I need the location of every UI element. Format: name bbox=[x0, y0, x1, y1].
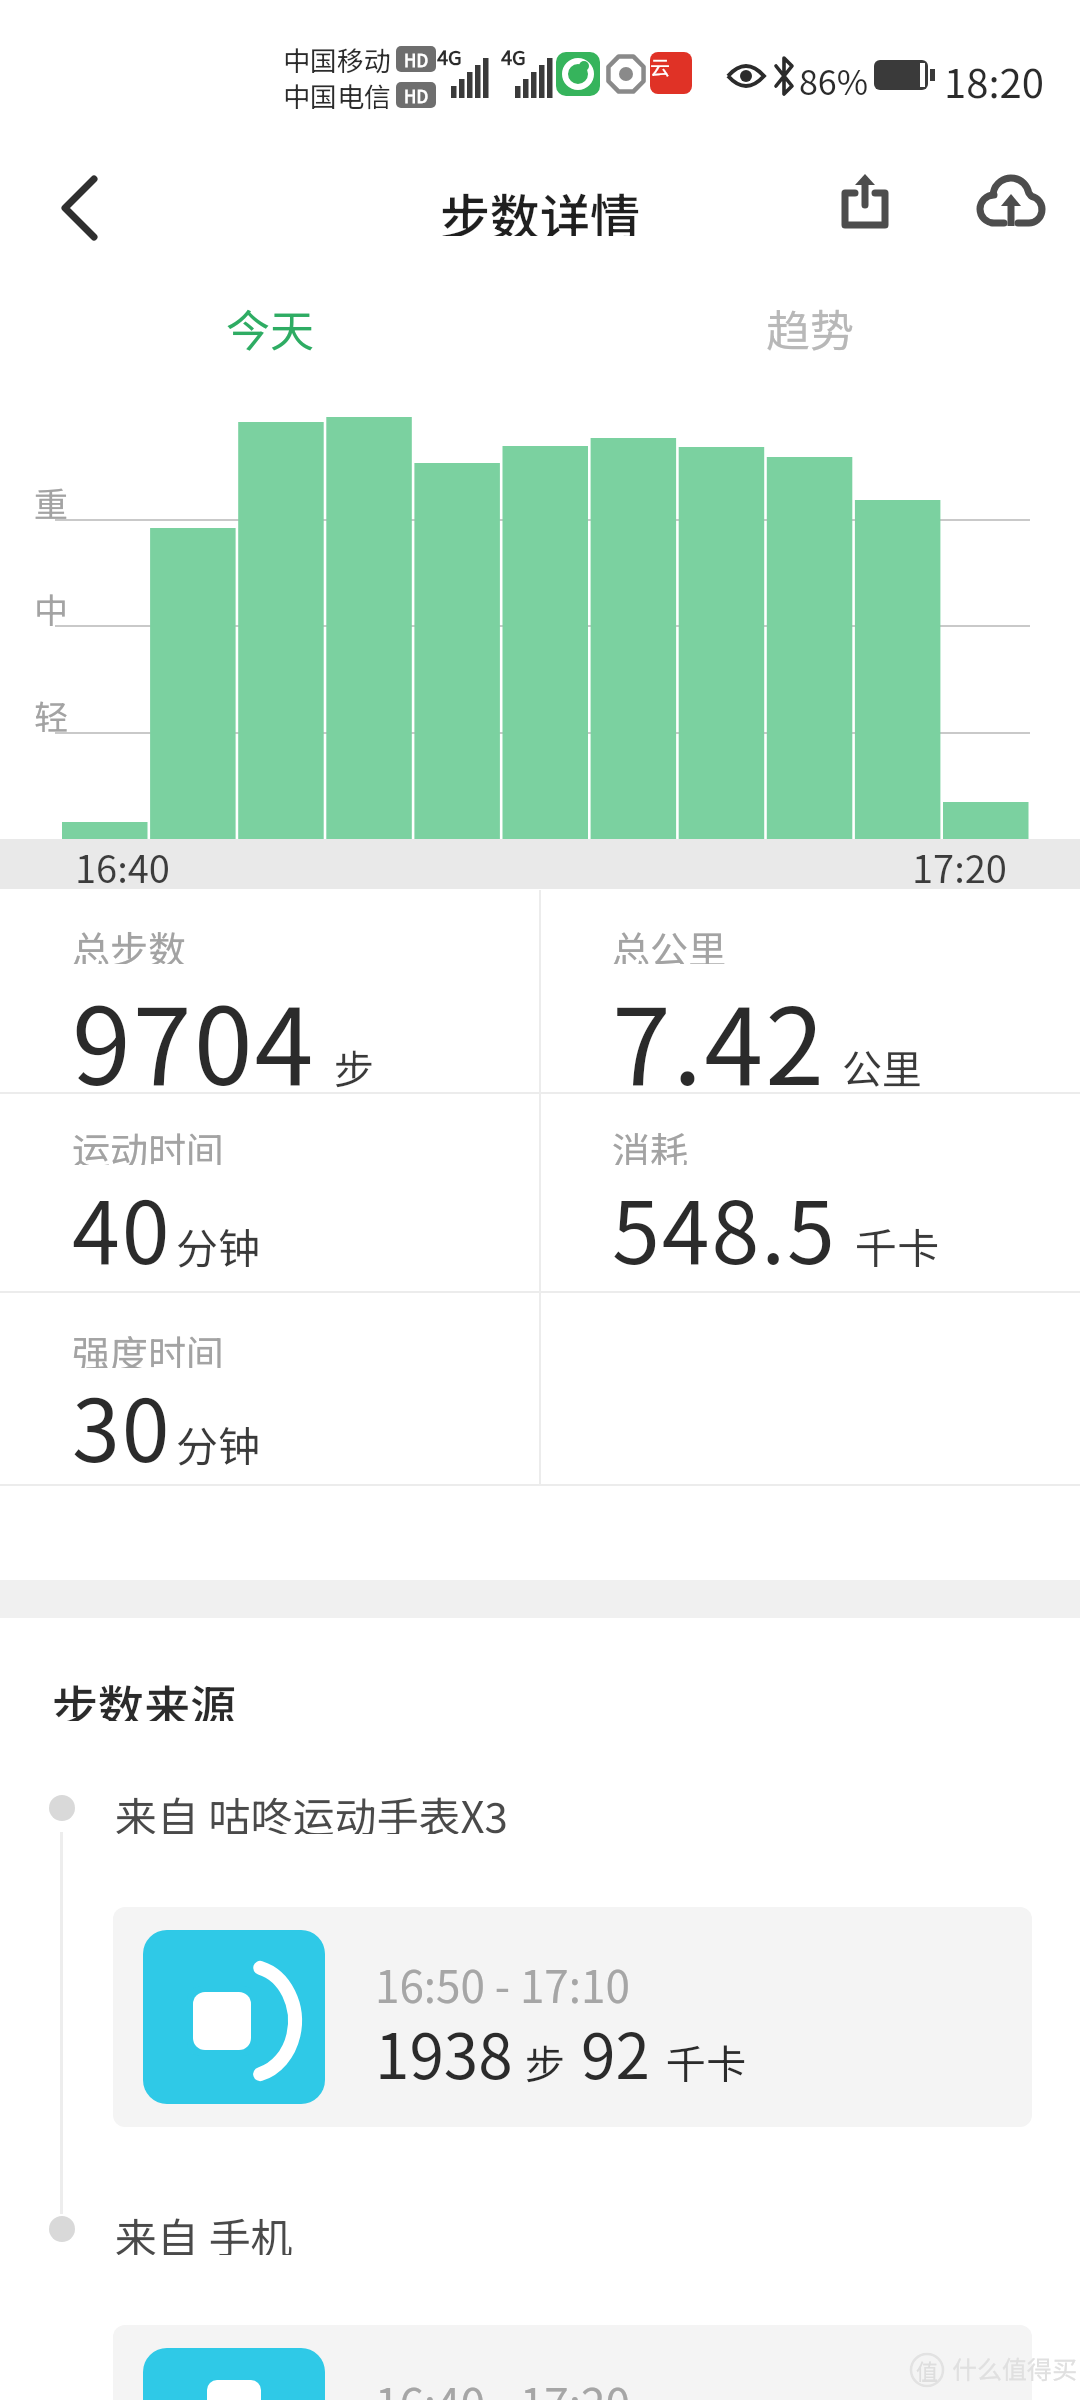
staticText: 17:20 bbox=[912, 839, 1007, 889]
staticText: 中国电信 bbox=[283, 76, 391, 110]
staticText: 千卡 bbox=[855, 1215, 940, 1276]
staticText: 步数详情 bbox=[440, 178, 640, 236]
staticText: HD bbox=[404, 47, 429, 72]
staticText: 来自 咕咚运动手表X3 bbox=[115, 1784, 508, 1834]
staticText: 什么值得买 bbox=[952, 2350, 1078, 2386]
button[interactable] bbox=[968, 160, 1054, 240]
button[interactable] bbox=[40, 170, 120, 246]
button[interactable]: 30 bbox=[72, 1354, 532, 1494]
staticText: 86% bbox=[799, 56, 869, 96]
button[interactable]: 40 bbox=[72, 1156, 532, 1296]
staticText: 中国移动 bbox=[283, 40, 391, 74]
staticText: 千卡 bbox=[666, 2033, 746, 2091]
staticText: 4G bbox=[437, 42, 462, 66]
button[interactable]: 16:50 - 17:10 bbox=[113, 1907, 1032, 2127]
staticText: 中 bbox=[34, 584, 68, 628]
staticText: 分钟 bbox=[176, 1215, 261, 1276]
button[interactable]: 9704 bbox=[72, 962, 532, 1112]
staticText: 分钟 bbox=[176, 1413, 261, 1474]
staticText: 16:40 bbox=[75, 839, 170, 889]
staticText: 趋势 bbox=[766, 296, 854, 352]
staticText: 步 bbox=[334, 1038, 374, 1096]
staticText: 30 bbox=[72, 1362, 172, 1487]
button[interactable]: 趋势 bbox=[740, 296, 880, 352]
staticText: 总步数 bbox=[72, 920, 187, 964]
button[interactable] bbox=[826, 164, 904, 238]
staticText: 步数来源 bbox=[52, 1671, 236, 1721]
staticText: 16:40 - 17:20 bbox=[375, 2370, 630, 2400]
staticText: 今天 bbox=[226, 296, 314, 352]
staticText: 值 bbox=[916, 2354, 939, 2386]
button[interactable]: 548.5 bbox=[612, 1156, 1072, 1296]
button[interactable]: 今天 bbox=[200, 296, 340, 352]
staticText: 重 bbox=[34, 478, 68, 522]
staticText: 运动时间 bbox=[72, 1121, 225, 1165]
staticText: 总公里 bbox=[612, 920, 727, 964]
staticText: HD bbox=[404, 83, 429, 108]
staticText: 4G bbox=[501, 42, 526, 66]
staticText: 消耗 bbox=[612, 1121, 689, 1165]
staticText: 7.42 bbox=[612, 962, 826, 1112]
staticText: 公里 bbox=[842, 1038, 922, 1096]
staticText: 步 bbox=[525, 2033, 565, 2091]
staticText: 548.5 bbox=[612, 1164, 837, 1289]
staticText: 来自 手机 bbox=[115, 2205, 293, 2255]
staticText: 9704 bbox=[72, 962, 316, 1112]
button[interactable]: 16:40 - 17:20 bbox=[113, 2325, 1032, 2400]
staticText: 轻 bbox=[34, 691, 68, 735]
staticText: 云 bbox=[650, 52, 670, 81]
staticText: 92 bbox=[581, 2007, 650, 2097]
button[interactable]: 7.42 bbox=[612, 962, 1072, 1112]
staticText: 18:20 bbox=[944, 52, 1044, 100]
staticText: 16:50 - 17:10 bbox=[375, 1952, 630, 2004]
staticText: 1938 bbox=[375, 2007, 513, 2097]
staticText: 40 bbox=[72, 1164, 172, 1289]
staticText: 强度时间 bbox=[72, 1324, 225, 1368]
